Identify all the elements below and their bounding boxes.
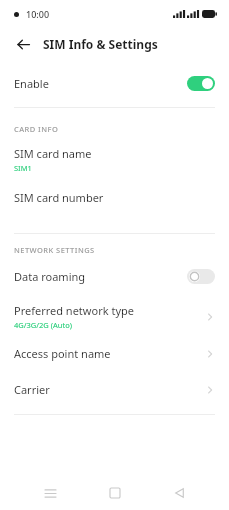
staticText: Preferred network type: [14, 303, 134, 318]
button[interactable]: SIM card name: [0, 146, 229, 173]
staticText: CARD INFO: [14, 124, 59, 134]
button[interactable]: Carrier: [0, 382, 229, 397]
button[interactable]: Back: [12, 33, 34, 55]
button[interactable]: Preferred network type: [0, 303, 229, 330]
staticText: SIM1: [14, 163, 32, 173]
staticText: Access point name: [14, 346, 111, 361]
staticText: SIM card number: [14, 190, 104, 205]
staticText: Enable: [14, 76, 49, 91]
button[interactable]: Enable on: [187, 76, 215, 91]
staticText: Carrier: [14, 382, 50, 397]
staticText: Data roaming: [14, 269, 86, 284]
button[interactable]: Back: [165, 479, 193, 507]
staticText: SIM card name: [14, 146, 92, 161]
button[interactable]: Data roaming: [0, 265, 229, 287]
staticText: 4G/3G/2G (Auto): [14, 320, 72, 330]
button[interactable]: Enable off: [187, 269, 215, 284]
button[interactable]: Access point name: [0, 346, 229, 361]
button[interactable]: Recent apps: [36, 479, 64, 507]
button[interactable]: SIM card number: [0, 190, 229, 205]
staticText: SIM Info & Settings: [43, 36, 158, 52]
button[interactable]: Home: [101, 479, 129, 507]
staticText: NETWORK SETTINGS: [14, 245, 95, 255]
staticText: 10:00: [26, 8, 50, 20]
button[interactable]: Enable: [0, 72, 229, 94]
